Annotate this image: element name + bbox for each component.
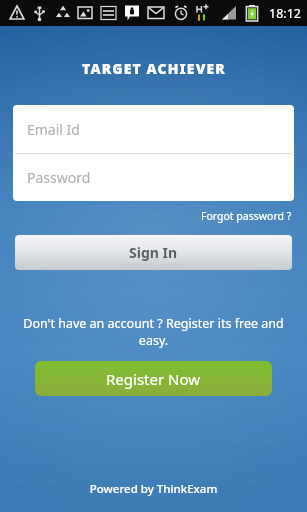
button[interactable]: Email Id	[13, 105, 294, 153]
staticText: Password	[27, 168, 91, 187]
staticText: TARGET ACHIEVER	[82, 59, 226, 78]
button[interactable]: Register Now	[35, 361, 272, 396]
staticText: Sign In	[129, 243, 178, 262]
staticText: Powered by ThinkExam	[0, 481, 307, 497]
button[interactable]: Password	[13, 154, 294, 201]
staticText: Email Id	[27, 120, 80, 139]
staticText: Register Now	[106, 369, 201, 389]
staticText: 18:12	[269, 5, 301, 22]
staticText: Don't have an account ? Register its fre…	[19, 315, 288, 349]
staticText: Forgot password ?	[201, 209, 292, 223]
button[interactable]: Sign In	[15, 235, 292, 270]
button[interactable]: Forgot password ?	[199, 206, 294, 226]
